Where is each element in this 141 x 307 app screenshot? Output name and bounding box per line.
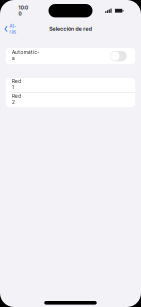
button[interactable]: Atrás: [0, 22, 21, 36]
staticText: Red 2: [12, 93, 21, 105]
staticText: Selección de red: [49, 26, 92, 32]
staticText: 10:00: [19, 5, 28, 17]
staticText: Red 1: [12, 78, 21, 90]
button[interactable]: Red 2: [6, 93, 135, 107]
staticText: Atrás: [9, 23, 16, 35]
staticText: Automática: [12, 49, 39, 61]
button[interactable]: Red 1: [6, 78, 135, 92]
button[interactable]: Automática: [6, 48, 135, 64]
